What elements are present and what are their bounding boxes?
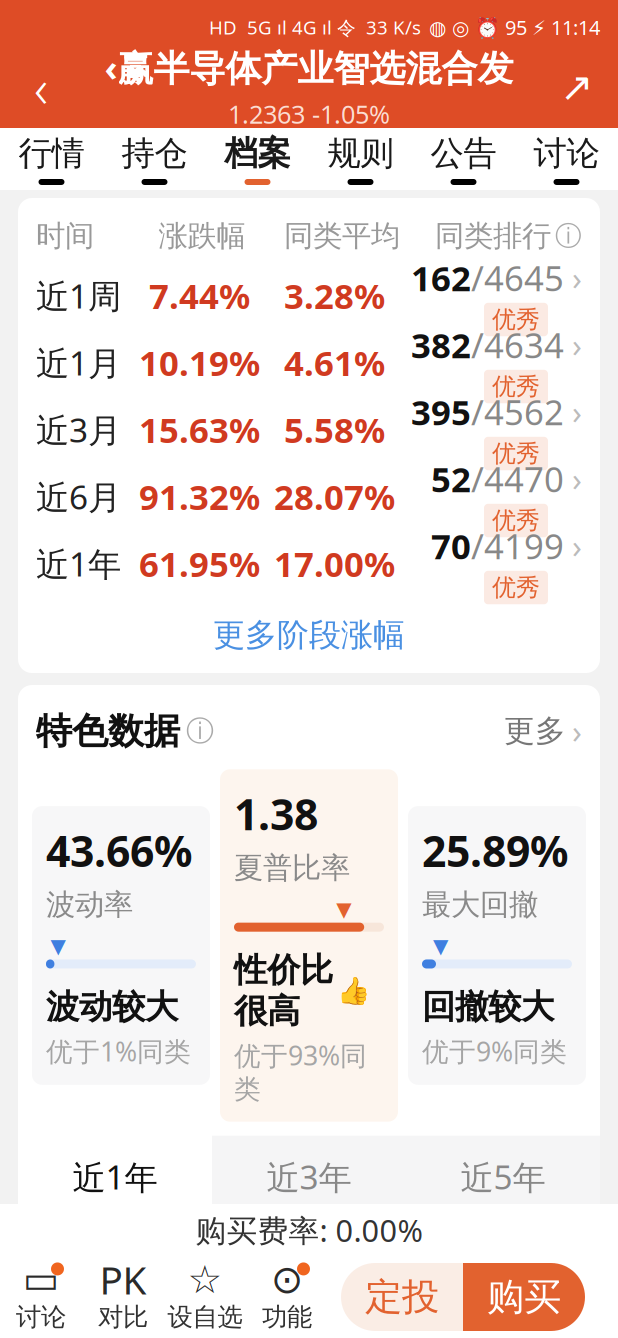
staticText: ▼ — [50, 935, 65, 957]
staticText: › — [572, 710, 582, 752]
staticText: 波动率 — [46, 887, 133, 923]
button[interactable]: ☆ — [164, 1256, 246, 1338]
button[interactable]: 近1周 — [18, 262, 600, 329]
button[interactable]: 近3年 — [212, 1136, 406, 1218]
staticText: 43.66% — [46, 822, 192, 879]
button[interactable]: 更多 — [504, 710, 582, 752]
staticText: 优于93%同类 — [234, 1037, 367, 1106]
staticText: 1.38 — [234, 785, 318, 842]
staticText: › — [564, 390, 582, 433]
button[interactable]: 近5年 — [406, 1136, 600, 1218]
staticText: ☆ — [187, 1257, 222, 1301]
staticText: 更多阶段涨幅 — [213, 615, 405, 655]
button[interactable]: 讨论 — [515, 128, 618, 190]
staticText: 公告 — [430, 133, 496, 174]
button[interactable]: 持仓 — [103, 128, 206, 190]
button[interactable]: 档案 — [206, 128, 309, 190]
staticText: 近3月 — [36, 407, 121, 452]
button[interactable]: 近1年 — [18, 530, 600, 597]
staticText: /4634 — [471, 322, 564, 368]
staticText: 162 — [411, 255, 471, 301]
staticText: 395 — [411, 389, 471, 435]
staticText: ‹ — [34, 52, 48, 122]
button[interactable]: 近3月 — [18, 396, 600, 463]
staticText: /4470 — [471, 456, 564, 502]
staticText: 优秀 — [492, 506, 540, 535]
button[interactable]: 更多阶段涨幅 — [18, 597, 600, 673]
staticText: 定投 — [365, 1274, 439, 1320]
staticText: ▼ — [433, 935, 448, 957]
staticText: 优于9%同类 — [422, 1033, 567, 1069]
staticText: 25.89% — [422, 822, 568, 879]
staticText: 功能 — [262, 1301, 312, 1332]
staticText: 1个季报关注点 — [360, 1252, 564, 1293]
staticText: 7.44% — [149, 272, 250, 318]
staticText: 3.28% — [284, 272, 385, 318]
staticText: 时间 — [36, 218, 94, 254]
staticText: 1.2363 -1.05% — [228, 97, 390, 131]
staticText: › — [564, 1251, 582, 1294]
staticText: 28.07% — [274, 473, 395, 519]
button[interactable]: ⊙ — [246, 1256, 328, 1338]
button[interactable]: ▭ — [0, 1256, 82, 1338]
staticText: 回撤较大 — [422, 986, 554, 1027]
button[interactable]: Share — [542, 52, 612, 122]
staticText: ⊙ — [271, 1257, 303, 1301]
button[interactable]: 近1年 — [18, 1136, 212, 1218]
staticText: /4645 — [471, 255, 564, 301]
staticText: 行情 — [18, 133, 84, 174]
staticText: 规则 — [327, 133, 393, 174]
staticText: 近3年 — [266, 1155, 351, 1199]
staticText: 近6月 — [36, 474, 121, 519]
staticText: 最大回撤 — [422, 887, 538, 923]
staticText: HD 5G ıl 4G ıl 令 33 K/s — [209, 15, 421, 40]
staticText: › — [564, 457, 582, 500]
button[interactable]: 购买 — [463, 1263, 585, 1331]
staticText: PK — [99, 1254, 146, 1305]
staticText: 近1年 — [72, 1155, 157, 1199]
staticText: 优秀 — [492, 573, 540, 602]
staticText: 17.00% — [274, 540, 395, 586]
staticText: 优秀 — [492, 305, 540, 334]
staticText: 涨跌幅 — [158, 218, 245, 254]
staticText: ‹赢半导体产业智选混合发 — [104, 43, 513, 91]
button[interactable]: 规则 — [309, 128, 412, 190]
staticText: 近1周 — [36, 273, 121, 318]
button[interactable]: 行情 — [0, 128, 103, 190]
staticText: 👍 — [337, 975, 370, 1006]
staticText: 持仓 — [121, 133, 187, 174]
button[interactable]: 基金持仓 — [18, 1230, 600, 1316]
staticText: 讨论 — [16, 1301, 66, 1332]
button[interactable]: 近6月 — [18, 463, 600, 530]
staticText: 优秀 — [492, 439, 540, 468]
staticText: 4.61% — [284, 339, 385, 385]
staticText: 近1年 — [36, 541, 121, 586]
staticText: › — [564, 323, 582, 366]
button[interactable]: 定投 — [341, 1263, 463, 1331]
button[interactable]: PK — [82, 1256, 164, 1338]
staticText: ⓘ — [555, 220, 582, 252]
button[interactable]: 近1月 — [18, 329, 600, 396]
staticText: 设自选 — [167, 1301, 242, 1332]
staticText: ▭ — [22, 1257, 59, 1301]
staticText: 波动较大 — [46, 986, 178, 1027]
staticText: 购买费率: 0.00% — [195, 1210, 422, 1250]
staticText: ⓘ — [186, 714, 214, 748]
staticText: 基金持仓 — [36, 1250, 184, 1296]
staticText: 近1月 — [36, 340, 121, 385]
staticText: 近5年 — [460, 1155, 545, 1199]
staticText: 10.19% — [139, 339, 260, 385]
staticText: 档案 — [224, 133, 290, 174]
staticText: ◍ ◎ ⏰ 95 ⚡︎ 11:14 — [429, 14, 600, 41]
staticText: 特色数据 — [36, 709, 180, 753]
button[interactable]: Back — [6, 52, 76, 122]
staticText: 70 — [431, 523, 471, 569]
staticText: 优于1%同类 — [46, 1033, 191, 1069]
staticText: 对比 — [98, 1301, 148, 1332]
button[interactable]: 公告 — [412, 128, 515, 190]
staticText: 52 — [431, 456, 471, 502]
staticText: ▼ — [336, 898, 351, 921]
staticText: 讨论 — [533, 133, 599, 174]
staticText: /4199 — [471, 523, 564, 569]
staticText: 优秀 — [492, 372, 540, 401]
